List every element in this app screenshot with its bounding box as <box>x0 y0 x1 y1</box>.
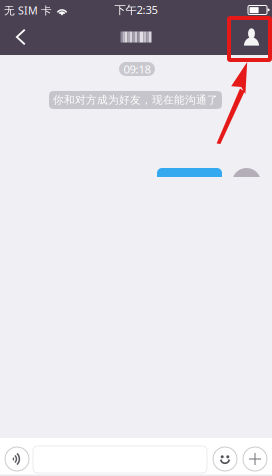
staticText: 09:18 <box>123 61 150 77</box>
button[interactable]: Voice message <box>5 447 29 471</box>
button[interactable]: Emoji <box>213 447 237 471</box>
button[interactable]: Back <box>0 19 40 55</box>
button[interactable]: Contact profile <box>232 19 272 55</box>
button[interactable]: More options <box>243 447 267 471</box>
staticText: 你和对方成为好友，现在能沟通了 <box>53 93 218 107</box>
staticText: 下午2:35 <box>114 2 157 17</box>
staticText: 无 SIM 卡 <box>4 3 52 17</box>
